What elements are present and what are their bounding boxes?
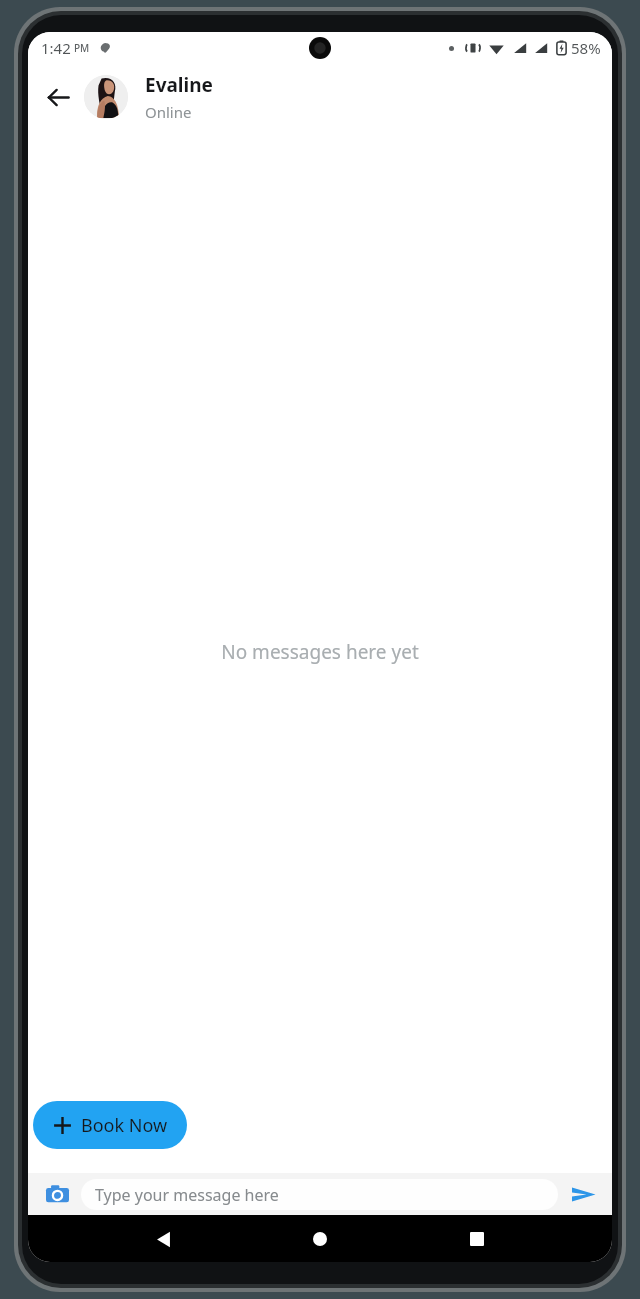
staticText: Type your message here [95, 1184, 279, 1206]
staticText: 1:42 [41, 38, 71, 58]
button[interactable]: Type your message here [81, 1179, 558, 1210]
button[interactable]: Profile photo [84, 75, 128, 119]
staticText: PM [74, 41, 90, 55]
staticText: Evaline [145, 72, 213, 98]
staticText: Online [145, 102, 192, 122]
staticText: 58% [571, 38, 601, 58]
button[interactable]: Send [566, 1177, 600, 1211]
button[interactable]: Recent apps [455, 1217, 499, 1261]
button[interactable]: Book Now [33, 1101, 187, 1149]
button[interactable]: Back [36, 75, 80, 119]
staticText: No messages here yet [221, 639, 419, 665]
button[interactable]: Camera [40, 1177, 74, 1211]
button[interactable]: Back [141, 1217, 185, 1261]
button[interactable]: Evaline [145, 72, 213, 122]
staticText: Book Now [81, 1113, 168, 1138]
button[interactable]: Home [298, 1217, 342, 1261]
